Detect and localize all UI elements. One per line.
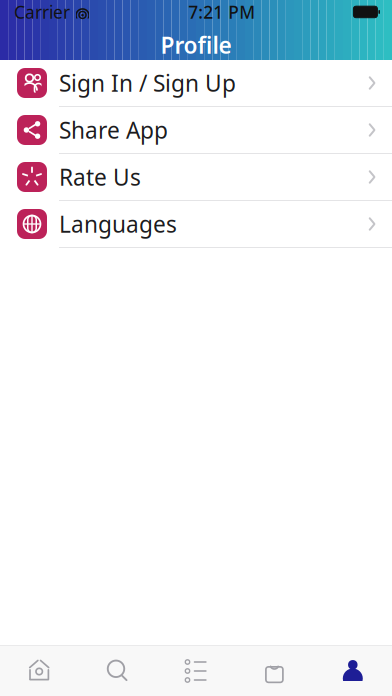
button[interactable]: Languages xyxy=(0,201,392,248)
button[interactable]: Share App xyxy=(0,107,392,154)
button[interactable]: Sign In / Sign Up xyxy=(0,60,392,107)
button[interactable]: Search xyxy=(78,646,157,696)
staticText: Profile xyxy=(160,30,231,60)
staticText: 7:21 PM xyxy=(188,0,255,23)
button[interactable]: Home xyxy=(0,646,78,696)
button[interactable]: Categories xyxy=(157,646,235,696)
staticText: Share App xyxy=(59,115,168,145)
staticText: Rate Us xyxy=(59,162,141,192)
button[interactable]: Cart xyxy=(235,646,314,696)
button[interactable]: Profile xyxy=(314,646,392,696)
staticText: Sign In / Sign Up xyxy=(59,68,236,98)
staticText: Languages xyxy=(59,209,177,239)
staticText: Carrier xyxy=(14,0,70,23)
button[interactable]: Rate Us xyxy=(0,154,392,201)
